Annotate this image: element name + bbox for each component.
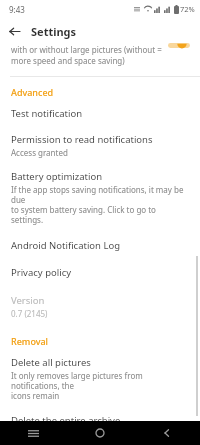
staticText: 0.7 (2145) [11, 308, 48, 319]
button[interactable]: Delete the entire archive [0, 414, 200, 421]
button[interactable]: Privacy policy [0, 266, 200, 279]
staticText: Removal [11, 335, 200, 347]
staticText: Android Notification Log [11, 239, 121, 252]
button[interactable]: Recent apps [0, 421, 66, 445]
staticText: Privacy policy [11, 266, 72, 279]
staticText: 72% [180, 4, 195, 14]
staticText: If the app stops saving notifications, i… [11, 184, 190, 225]
staticText: Delete all pictures [11, 356, 91, 369]
button[interactable]: with or without large pictures (without … [0, 44, 200, 72]
staticText: Permission to read notifications [11, 133, 153, 146]
staticText: Battery optimization [11, 170, 103, 183]
button[interactable]: Test notification [0, 107, 200, 120]
staticText: Advanced [11, 86, 200, 98]
staticText: Access granted [11, 147, 68, 158]
button[interactable]: Android Notification Log [0, 239, 200, 252]
staticText: Delete the entire archive [11, 414, 121, 421]
staticText: It only removes large pictures from noti… [11, 370, 190, 401]
button[interactable]: Home [66, 421, 133, 445]
staticText: Settings [31, 24, 77, 39]
staticText: 9:43 [9, 4, 25, 15]
staticText: with or without large pictures (without … [11, 44, 162, 66]
button[interactable]: Delete all pictures [0, 356, 200, 401]
staticText: Version [11, 294, 45, 307]
button[interactable]: Permission to read notifications [0, 133, 200, 158]
button[interactable]: Back [133, 421, 200, 445]
button[interactable]: Back [5, 22, 23, 40]
button[interactable]: Battery optimization [0, 170, 200, 225]
staticText: Test notification [11, 107, 83, 120]
